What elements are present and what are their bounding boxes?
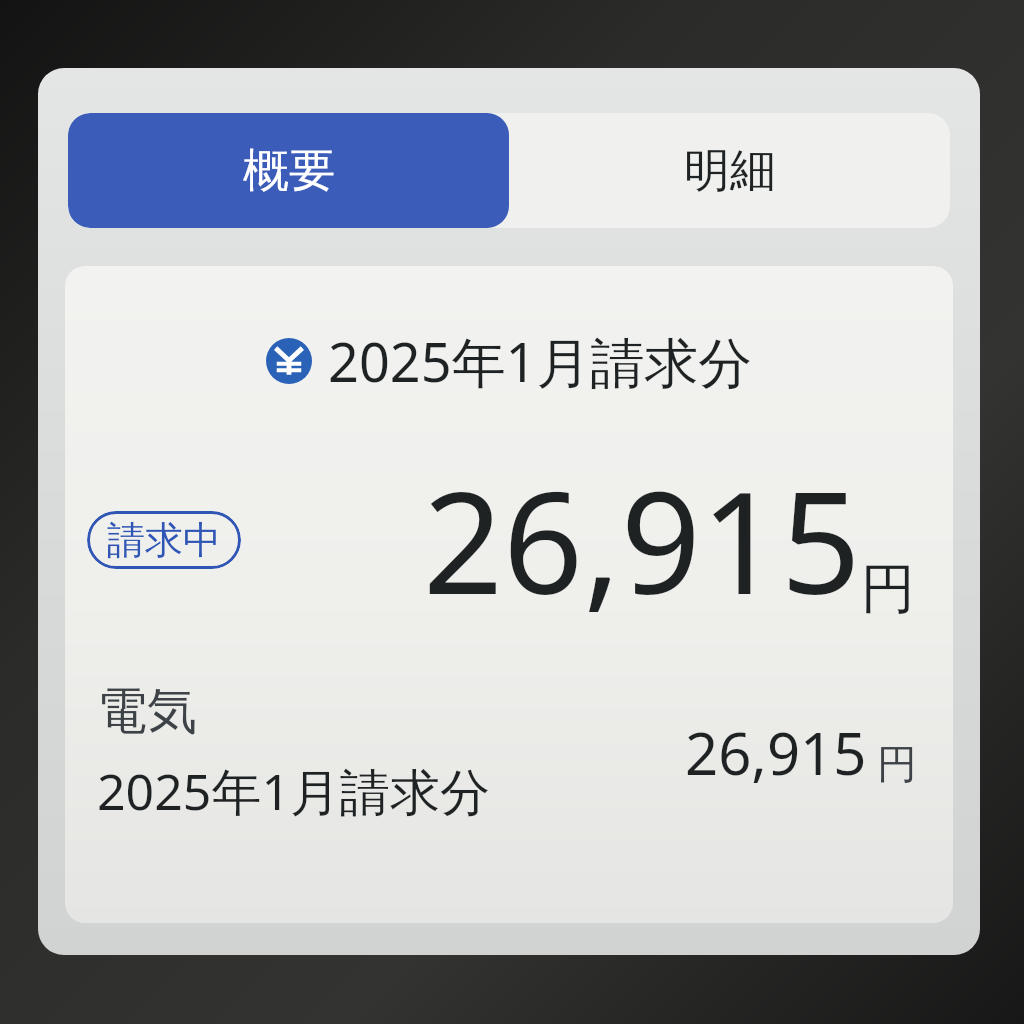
staticText: 明細 xyxy=(684,142,776,200)
staticText: 概要 xyxy=(243,142,335,200)
staticText: 円 xyxy=(877,739,917,789)
button[interactable]: 明細 xyxy=(509,113,950,228)
staticText: 円 xyxy=(861,555,915,623)
button[interactable]: Yen amount xyxy=(65,266,953,923)
staticText: 26,915 xyxy=(685,713,867,792)
staticText: 2025年1月請求分 xyxy=(97,757,490,825)
button[interactable]: 電気 xyxy=(97,680,917,825)
button[interactable]: 概要 xyxy=(68,113,509,228)
button[interactable]: 請求中 xyxy=(107,511,221,569)
staticText: 電気 xyxy=(97,680,197,743)
other: Yen amount xyxy=(266,338,312,384)
staticText: 請求中 xyxy=(107,516,221,564)
staticText: 2025年1月請求分 xyxy=(328,324,753,398)
staticText: 26,915 xyxy=(423,444,861,635)
